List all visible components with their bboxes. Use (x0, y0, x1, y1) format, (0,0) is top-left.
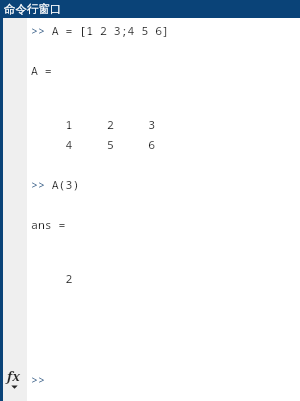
button[interactable]: Insert function (2, 366, 26, 390)
staticText: 4 5 6 (31, 137, 156, 153)
staticText: A = (31, 63, 52, 79)
staticText: 命令行窗口 (4, 2, 62, 16)
button[interactable]: >> (31, 368, 300, 392)
staticText: ans = (31, 217, 66, 233)
staticText: 2 (31, 271, 73, 287)
button[interactable]: 命令行窗口 (0, 0, 300, 18)
staticText: fx (7, 367, 21, 385)
staticText: >> A = [1 2 3;4 5 6] (31, 23, 169, 39)
staticText: 1 2 3 (31, 117, 156, 133)
staticText: >> A(3) (31, 177, 80, 193)
staticText: >> (31, 372, 45, 388)
